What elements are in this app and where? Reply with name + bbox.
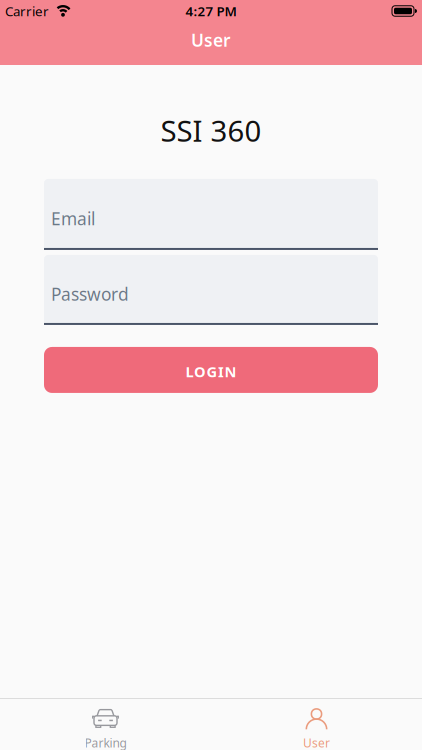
staticText: Parking <box>84 735 126 750</box>
textField[interactable]: Email <box>44 179 378 250</box>
button[interactable]: Parking <box>0 699 211 750</box>
button[interactable]: LOGIN <box>44 347 378 393</box>
textField[interactable]: Password <box>44 255 378 325</box>
staticText: Password <box>51 282 129 305</box>
staticText: Carrier <box>5 2 49 20</box>
staticText: SSI 360 <box>160 111 261 150</box>
staticText: User <box>303 735 330 750</box>
staticText: User <box>191 28 231 51</box>
button[interactable]: User <box>211 699 422 750</box>
staticText: Email <box>51 207 95 230</box>
staticText: 4:27 PM <box>185 2 236 20</box>
staticText: LOGIN <box>185 362 236 381</box>
